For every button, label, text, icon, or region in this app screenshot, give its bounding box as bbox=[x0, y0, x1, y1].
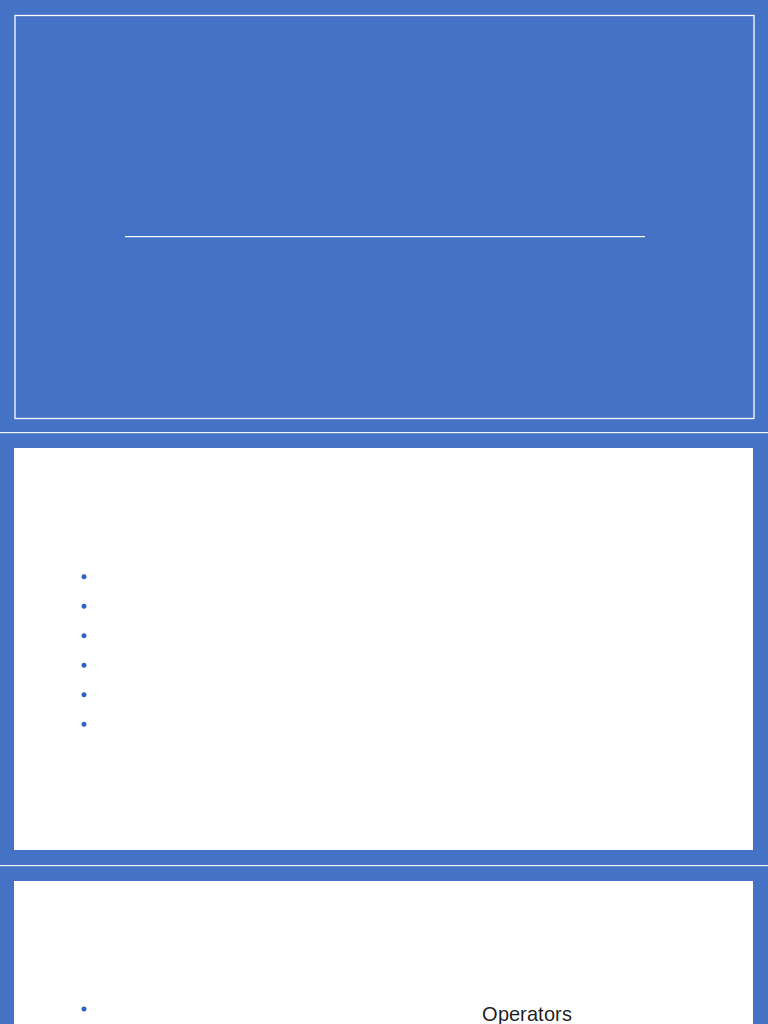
button[interactable]: Slide 3, Operators bbox=[14, 881, 753, 1024]
staticText: Operators bbox=[482, 1003, 572, 1024]
button[interactable]: Slide 1, title slide bbox=[14, 15, 753, 418]
button[interactable]: Slide 2, bulleted list bbox=[14, 448, 753, 850]
